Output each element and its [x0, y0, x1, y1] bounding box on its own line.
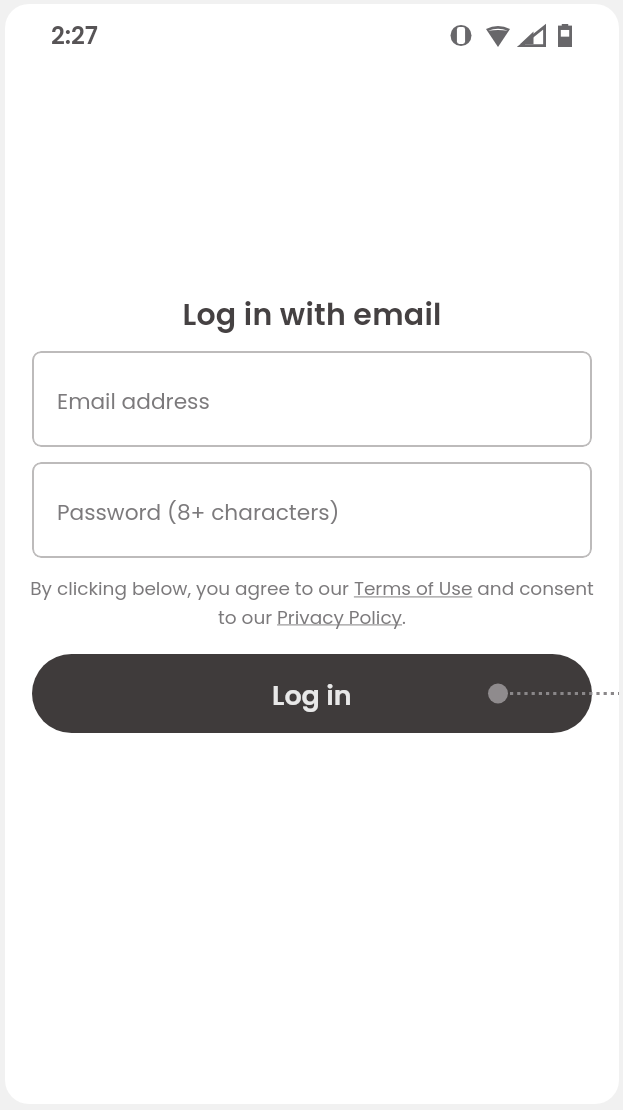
staticText: Log in with email — [5, 294, 619, 336]
staticText: Log in — [272, 677, 352, 715]
other: Mobile signal — [520, 25, 546, 47]
staticText: 2:27 — [51, 19, 99, 53]
staticText: Password (8+ characters) — [57, 497, 340, 527]
button[interactable]: Password (8+ characters) — [32, 462, 592, 558]
other: Battery — [558, 24, 572, 47]
staticText: Email address — [57, 386, 210, 416]
button[interactable]: Log in — [32, 654, 592, 733]
other: Do not disturb — [449, 25, 473, 46]
other: Wi-Fi — [486, 25, 510, 47]
button[interactable]: By clicking below, you agree to our Term… — [27, 576, 597, 630]
button[interactable]: Email address — [32, 351, 592, 447]
